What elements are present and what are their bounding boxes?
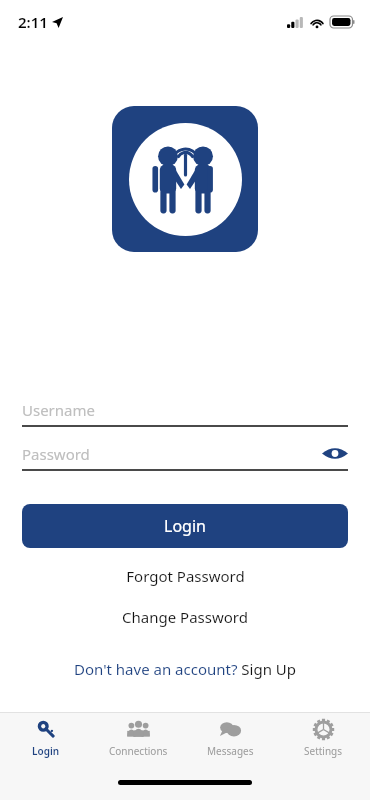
button[interactable]: Password — [22, 441, 348, 466]
button[interactable]: Login — [0, 713, 92, 765]
button[interactable]: Connections — [92, 713, 184, 765]
other: App logo — [112, 106, 258, 252]
staticText: Don't have an account? Sign Up — [74, 659, 297, 679]
staticText: Login — [164, 515, 206, 537]
button[interactable]: Settings — [277, 713, 370, 765]
staticText: Password — [22, 444, 90, 464]
staticText: Forgot Password — [126, 566, 245, 586]
staticText: Login — [32, 744, 60, 758]
button[interactable]: Username — [22, 397, 348, 422]
button[interactable]: Change Password — [0, 604, 370, 630]
staticText: Username — [22, 400, 95, 420]
staticText: 2:11 — [18, 12, 48, 32]
staticText: Change Password — [122, 607, 248, 627]
button[interactable]: Forgot Password — [0, 563, 370, 589]
button[interactable]: Messages — [184, 713, 277, 765]
staticText: Settings — [304, 744, 343, 758]
staticText: Messages — [207, 744, 254, 758]
button[interactable]: Show password — [322, 445, 348, 462]
staticText: Connections — [109, 744, 168, 758]
button[interactable]: Don't have an account? Sign Up — [0, 656, 370, 682]
button[interactable]: Login — [22, 504, 348, 548]
